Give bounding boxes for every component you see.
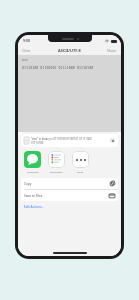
button[interactable]: Close preview [110,138,115,143]
staticText: 9:00 [23,38,31,43]
button[interactable]: Clear [18,47,35,54]
staticText: ASCII/UTF-8 [58,48,81,53]
button[interactable]: Messages [23,150,42,174]
button[interactable]: Save to Files [21,190,118,201]
staticText: Clear [22,48,31,53]
staticText: "text" in binary is 01110100 01100101 01… [31,137,92,141]
staticText: 01110100 01100101 01111000 01110100 [22,65,94,70]
staticText: Edit Actions... [24,205,45,209]
other: Copy [110,181,115,186]
staticText: text [22,58,28,62]
staticText: Copy [24,182,32,186]
staticText: More [77,170,84,173]
staticText: Reminders [50,170,63,173]
staticText: 01110100 [31,141,44,145]
other: Save to Files [109,193,115,198]
button[interactable]: Edit Actions... [21,204,48,210]
button[interactable]: More [71,150,90,174]
button[interactable]: Copy [21,178,118,189]
button[interactable]: Share [103,47,121,54]
button[interactable]: "text" in binary is 01110100 01100101 01… [21,134,118,147]
staticText: Share [107,48,117,53]
button[interactable]: Reminders [47,150,66,174]
staticText: Messages [27,170,39,173]
staticText: Save to Files [24,194,43,198]
